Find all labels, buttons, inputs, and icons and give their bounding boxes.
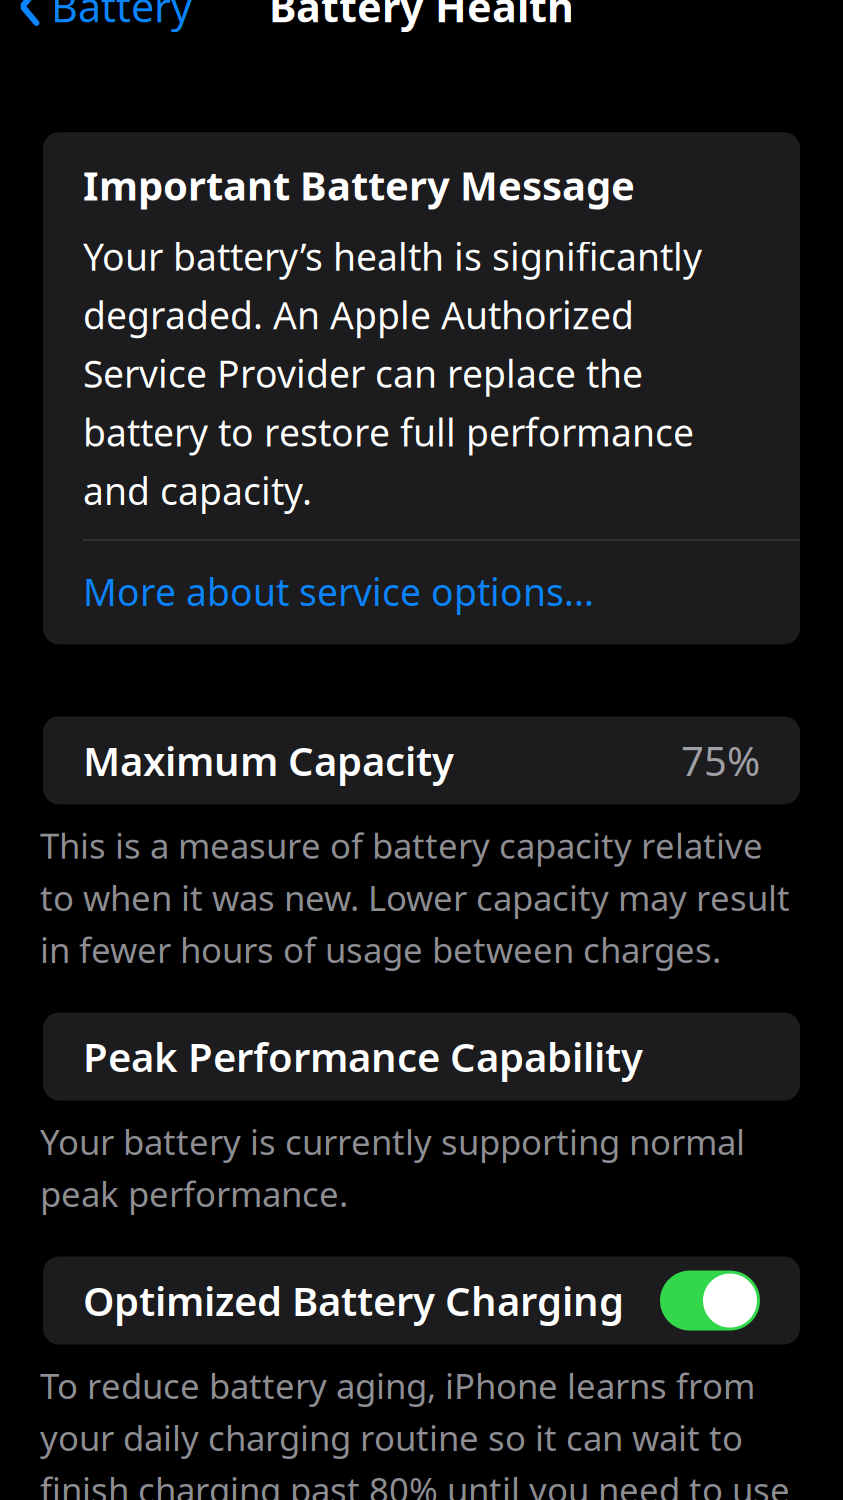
button[interactable]: Battery bbox=[0, 0, 210, 34]
staticText: This is a measure of battery capacity re… bbox=[40, 822, 790, 972]
staticText: To reduce battery aging, iPhone learns f… bbox=[40, 1363, 790, 1500]
button[interactable]: Optimized Battery Charging bbox=[43, 1257, 800, 1345]
staticText: More about service options... bbox=[83, 567, 594, 616]
button[interactable]: Peak Performance Capability bbox=[43, 1012, 800, 1100]
staticText: Battery bbox=[51, 0, 192, 34]
staticText: Optimized Battery Charging bbox=[83, 1274, 624, 1327]
staticText: Your battery’s health is significantly d… bbox=[83, 231, 702, 515]
staticText: 75% bbox=[681, 734, 760, 787]
staticText: Important Battery Message bbox=[83, 158, 635, 211]
staticText: Maximum Capacity bbox=[83, 734, 454, 787]
staticText: Peak Performance Capability bbox=[83, 1030, 643, 1083]
staticText: Your battery is currently supporting nor… bbox=[40, 1118, 745, 1217]
button[interactable]: More about service options... bbox=[83, 541, 760, 644]
staticText: Battery Health bbox=[269, 0, 574, 34]
